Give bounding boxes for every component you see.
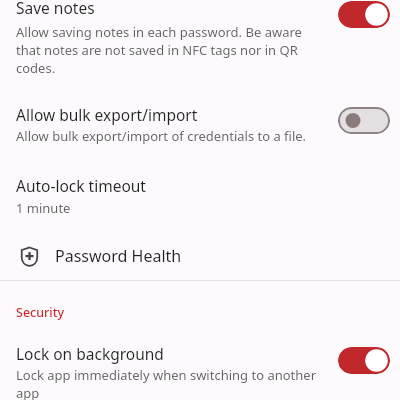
- button[interactable]: Allow bulk export/import: [0, 98, 400, 156]
- button[interactable]: Auto-lock timeout: [0, 170, 400, 222]
- staticText: Allow bulk export/import of credentials …: [16, 127, 326, 145]
- staticText: Lock on background: [16, 343, 164, 364]
- staticText: Auto-lock timeout: [16, 175, 146, 196]
- staticText: 1 minute: [16, 199, 71, 217]
- button[interactable]: Password Health: [0, 234, 400, 278]
- staticText: Lock app immediately when switching to a…: [16, 366, 324, 400]
- staticText: Allow saving notes in each password. Be …: [16, 23, 324, 77]
- staticText: Security: [16, 304, 65, 321]
- button[interactable]: Toggle setting: [338, 107, 390, 134]
- button[interactable]: Save notes: [0, 0, 400, 90]
- button[interactable]: Lock on background: [0, 338, 400, 400]
- button[interactable]: Toggle setting: [338, 347, 390, 374]
- staticText: Save notes: [16, 0, 95, 18]
- staticText: Password Health: [55, 245, 182, 267]
- button[interactable]: Toggle setting: [338, 1, 390, 28]
- staticText: Allow bulk export/import: [16, 104, 198, 125]
